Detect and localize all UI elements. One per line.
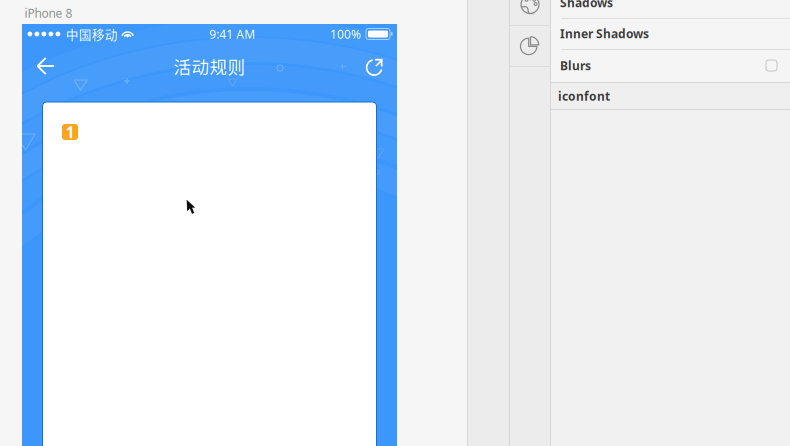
staticText: 1	[65, 121, 74, 143]
button[interactable]: Shadows	[551, 0, 790, 18]
staticText: iPhone 8	[24, 5, 72, 21]
staticText: 9:41 AM	[209, 26, 255, 42]
button[interactable]: Back	[24, 44, 68, 88]
button[interactable]: iconfont	[551, 83, 790, 109]
staticText: iconfont	[558, 88, 610, 104]
staticText: 中国移动	[66, 25, 118, 43]
button[interactable]: Styles	[510, 25, 550, 66]
button[interactable]: Blurs	[551, 49, 790, 82]
staticText: 100%	[330, 26, 361, 42]
staticText: Shadows	[560, 0, 613, 10]
button[interactable]: Appearance	[510, 0, 550, 25]
staticText: Blurs	[560, 57, 591, 73]
staticText: Inner Shadows	[560, 25, 649, 41]
button[interactable]: Share	[353, 45, 397, 89]
staticText: 活动规则	[173, 53, 245, 79]
button[interactable]: Inner Shadows	[551, 18, 790, 49]
